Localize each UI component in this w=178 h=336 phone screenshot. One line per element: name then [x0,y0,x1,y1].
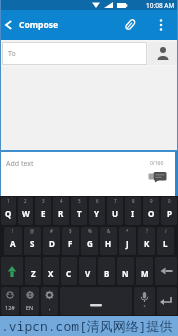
staticText: U [112,208,119,219]
button[interactable] [154,18,168,32]
button[interactable]: Z [25,257,41,285]
staticText: E [41,208,46,219]
staticText: 12# [5,304,15,311]
staticText: ! [12,228,14,234]
button[interactable]: 3 [35,197,51,225]
button[interactable]: , [41,287,58,315]
staticText: O [148,208,155,219]
staticText: 4 [60,198,63,204]
button[interactable]: 12# [1,287,19,315]
button[interactable]: C [61,257,77,285]
button[interactable] [60,287,132,315]
staticText: N [122,268,129,279]
button[interactable] [1,257,23,285]
button[interactable]: & [100,227,117,255]
button[interactable]: 2 [18,197,33,225]
staticText: H [105,238,112,249]
staticText: ? [146,228,148,234]
staticText: I [131,208,135,219]
button[interactable]: B [98,257,115,285]
staticText: 9 [150,198,153,204]
staticText: J [126,238,129,249]
staticText: F [68,238,73,249]
staticText: / [165,228,167,234]
button[interactable]: 5 [71,197,87,225]
staticText: # [50,228,53,234]
button[interactable]: $ [62,227,79,255]
staticText: T [77,208,82,219]
staticText: Q [5,208,12,219]
button[interactable]: N [117,257,134,285]
button[interactable]: M [136,257,153,285]
staticText: Compose [19,19,59,31]
staticText: S [30,238,35,249]
button[interactable]: Compose [0,17,59,33]
staticText: % [88,228,92,234]
button[interactable]: V [79,257,96,285]
staticText: To [8,49,16,59]
button[interactable] [146,169,170,187]
button[interactable]: EN [21,287,39,315]
staticText: 6 [96,198,99,204]
staticText: P [167,208,172,219]
staticText: A [10,238,16,249]
staticText: K [144,238,150,249]
button[interactable]: Add text [6,159,34,169]
button[interactable] [122,17,138,33]
button[interactable]: 9 [143,197,159,225]
staticText: G [87,238,93,249]
button[interactable]: 8 [125,197,141,225]
staticText: & [107,228,111,234]
button[interactable] [155,257,177,285]
button[interactable] [148,42,177,65]
staticText: D [49,238,55,249]
staticText: V [85,268,91,279]
button[interactable]: 1 [1,197,16,225]
staticText: X [48,268,54,279]
button[interactable]: * [119,227,136,255]
staticText: , [49,304,51,312]
button[interactable]: 0 [161,197,177,225]
button[interactable]: ? [138,227,155,255]
staticText: B [104,268,110,279]
staticText: 0/160 [150,160,164,167]
button[interactable]: / [157,227,174,255]
staticText: 3 [42,198,45,204]
button[interactable]: # [43,227,60,255]
button[interactable]: 4 [53,197,69,225]
staticText: 8 [132,198,135,204]
staticText: .vipcn.com[清风网络]提供 [1,317,173,335]
button[interactable]: 7 [107,197,123,225]
staticText: C [66,268,72,279]
staticText: Z [31,268,36,279]
staticText: R [58,208,64,219]
staticText: 1 [7,198,10,204]
button[interactable] [157,287,177,315]
staticText: 2 [24,198,27,204]
button[interactable]: ! [4,227,22,255]
staticText: EN [26,304,34,311]
staticText: @ [30,228,35,234]
staticText: Y [94,208,100,219]
staticText: * [126,228,129,234]
staticText: W [22,208,30,219]
button[interactable]: % [81,227,98,255]
staticText: 7 [114,198,117,204]
button[interactable] [134,287,155,315]
button[interactable]: X [43,257,59,285]
button[interactable]: @ [24,227,41,255]
staticText: 0 [168,198,171,204]
staticText: 5 [78,198,81,204]
staticText: $ [69,228,72,234]
button[interactable]: 6 [89,197,105,225]
staticText: 10:08 AM [146,1,175,10]
staticText: M [141,268,149,279]
button[interactable]: To [2,42,147,65]
staticText: L [163,238,168,249]
